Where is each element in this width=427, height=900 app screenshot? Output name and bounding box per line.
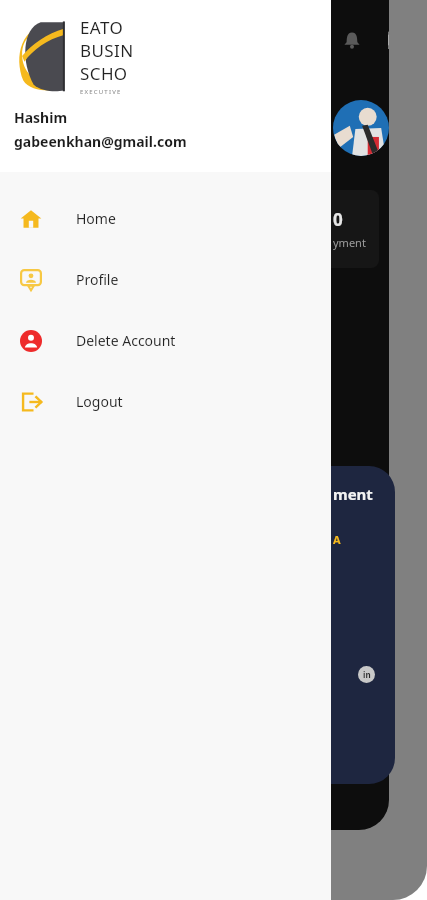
button[interactable]: Delete Account [0, 310, 331, 371]
staticText: Hashim [14, 108, 68, 127]
staticText: SCHO [80, 62, 128, 85]
staticText: Home [76, 209, 116, 228]
button[interactable]: 0 [331, 190, 379, 268]
staticText: gabeenkhan@gmail.com [14, 132, 187, 151]
staticText: A [333, 532, 341, 547]
button[interactable]: Profile [0, 249, 331, 310]
button[interactable]: Home [0, 188, 331, 249]
button[interactable]: LinkedIn [358, 666, 375, 683]
button[interactable]: ment [331, 466, 395, 784]
staticText: EXECUTIVE [80, 88, 122, 96]
staticText: Logout [76, 392, 123, 411]
staticText: EATO [80, 16, 124, 39]
staticText: yment [333, 235, 366, 250]
button[interactable]: Notifications [339, 27, 365, 53]
staticText: Delete Account [76, 331, 176, 350]
staticText: 0 [333, 208, 343, 231]
button[interactable]: Logout [0, 371, 331, 432]
staticText: ment [333, 484, 373, 504]
staticText: BUSIN [80, 39, 134, 62]
staticText: in [363, 669, 371, 680]
staticText: Profile [76, 270, 119, 289]
